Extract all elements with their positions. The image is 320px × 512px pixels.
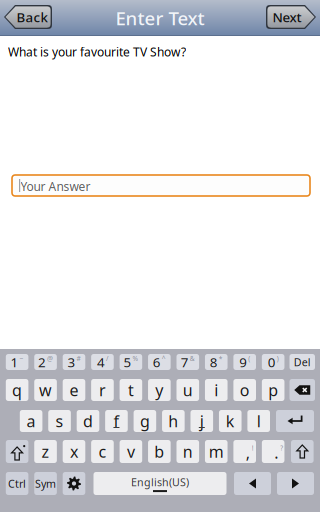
button[interactable]: 7 <box>176 354 199 370</box>
staticText: e <box>69 379 78 401</box>
staticText: * <box>219 354 223 363</box>
button[interactable]: 8 <box>205 354 228 370</box>
button[interactable]: f <box>105 410 128 432</box>
button[interactable]: 5 <box>120 354 142 370</box>
button[interactable]: Next <box>266 5 316 29</box>
button[interactable]: Settings <box>63 472 85 495</box>
staticText: Back <box>16 8 47 26</box>
button[interactable]: n <box>176 440 199 463</box>
button[interactable]: 3 <box>63 354 85 370</box>
button[interactable]: w <box>34 379 57 401</box>
button[interactable]: x <box>63 440 85 463</box>
button[interactable]: Your Answer <box>12 175 310 196</box>
button[interactable]: Sym <box>34 472 57 495</box>
button[interactable]: z <box>34 440 57 463</box>
staticText: ! <box>252 443 254 452</box>
button[interactable]: c <box>91 440 114 463</box>
staticText: p <box>268 379 278 401</box>
staticText: l <box>257 410 261 432</box>
staticText: / <box>106 354 108 363</box>
staticText: , <box>246 442 250 463</box>
button[interactable]: o <box>233 379 256 401</box>
staticText: v <box>127 441 135 462</box>
staticText: g <box>140 410 150 432</box>
staticText: Del <box>294 355 311 369</box>
staticText: & <box>190 354 195 363</box>
button[interactable]: . <box>262 440 284 463</box>
button[interactable]: l <box>247 410 270 432</box>
staticText: i <box>214 379 218 401</box>
button[interactable]: p <box>262 379 284 401</box>
button[interactable]: Back <box>4 5 52 29</box>
button[interactable]: 4 <box>91 354 114 370</box>
button[interactable]: 9 <box>233 354 256 370</box>
staticText: 2 <box>38 353 46 371</box>
staticText: u <box>183 379 193 401</box>
staticText: w <box>39 379 52 401</box>
button[interactable]: Del <box>289 354 315 370</box>
staticText: ) <box>277 354 279 363</box>
button[interactable]: 1 <box>6 354 28 370</box>
button[interactable]: Right <box>277 472 314 495</box>
button[interactable]: q <box>6 379 28 401</box>
staticText: t <box>128 379 134 401</box>
button[interactable]: s <box>48 410 71 432</box>
button[interactable]: Ctrl <box>6 472 28 495</box>
staticText: f <box>113 410 119 432</box>
button[interactable]: 0 <box>262 354 284 370</box>
button[interactable]: m <box>205 440 228 463</box>
staticText: d <box>83 410 93 432</box>
staticText: y <box>155 379 163 401</box>
staticText: 0 <box>268 353 276 371</box>
staticText: o <box>240 379 250 401</box>
staticText: x <box>70 441 78 462</box>
button[interactable]: k <box>219 410 242 432</box>
button[interactable]: , <box>233 440 256 463</box>
staticText: k <box>226 410 235 432</box>
button[interactable]: r <box>91 379 114 401</box>
button[interactable]: 6 <box>148 354 171 370</box>
staticText: 5 <box>123 353 131 371</box>
button[interactable]: g <box>134 410 156 432</box>
button[interactable]: t <box>120 379 142 401</box>
button[interactable]: u <box>176 379 199 401</box>
staticText: ( <box>248 354 250 363</box>
button[interactable]: Shift <box>291 440 314 463</box>
button[interactable]: e <box>63 379 85 401</box>
staticText: 7 <box>181 353 189 371</box>
button[interactable]: a <box>20 410 42 432</box>
staticText: ^ <box>162 354 166 363</box>
staticText: Your Answer <box>20 178 90 194</box>
staticText: 9 <box>239 353 247 371</box>
button[interactable]: Left <box>234 472 271 495</box>
button[interactable]: d <box>77 410 99 432</box>
staticText: # <box>76 354 80 363</box>
staticText: h <box>168 410 178 432</box>
button[interactable]: Backspace <box>289 379 315 401</box>
button[interactable]: Shift <box>6 440 28 463</box>
button[interactable]: y <box>148 379 171 401</box>
staticText: 8 <box>210 353 218 371</box>
button[interactable]: 2 <box>34 354 57 370</box>
staticText: % <box>132 354 138 363</box>
staticText: 3 <box>67 353 75 371</box>
button[interactable]: j <box>190 410 213 432</box>
button[interactable]: i <box>205 379 228 401</box>
staticText: s <box>55 410 63 432</box>
staticText: Next <box>272 8 301 26</box>
button[interactable]: Space <box>93 472 226 495</box>
staticText: Ctrl <box>8 476 26 491</box>
staticText: Enter Text <box>115 6 204 30</box>
staticText: 1 <box>11 353 19 371</box>
button[interactable]: b <box>148 440 171 463</box>
staticText: Sym <box>35 476 56 491</box>
staticText: @ <box>47 354 53 363</box>
staticText: q <box>12 379 22 401</box>
button[interactable]: v <box>120 440 142 463</box>
staticText: r <box>99 379 106 401</box>
button[interactable]: h <box>162 410 185 432</box>
staticText: ? <box>280 443 283 452</box>
button[interactable]: Enter <box>276 410 314 432</box>
staticText: m <box>209 441 224 462</box>
staticText: 6 <box>153 353 161 371</box>
